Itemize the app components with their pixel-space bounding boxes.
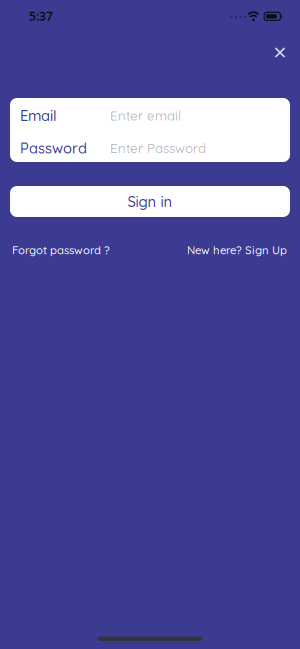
staticText: New here? Sign Up: [187, 243, 287, 257]
staticText: Password: [20, 139, 87, 157]
button[interactable]: Forgot password ?: [12, 243, 110, 257]
staticText: Sign in: [127, 192, 172, 211]
staticText: 5:37: [29, 8, 53, 24]
staticText: Email: [20, 106, 57, 125]
button[interactable]: Sign in: [10, 186, 290, 217]
button[interactable]: New here? Sign Up: [187, 243, 287, 257]
staticText: Forgot password ?: [12, 243, 110, 257]
button[interactable]: Close: [271, 44, 288, 61]
staticText: Enter Password: [110, 140, 206, 156]
staticText: Enter email: [110, 107, 181, 124]
